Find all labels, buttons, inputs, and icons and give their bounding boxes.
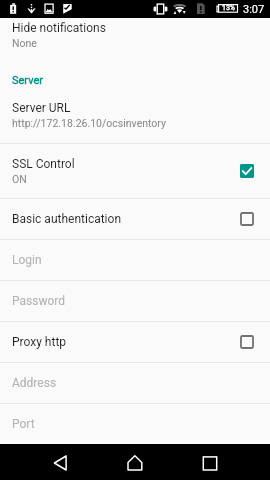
button[interactable]: Back xyxy=(38,444,83,480)
staticText: Hide notifications xyxy=(12,21,106,35)
staticText: Address xyxy=(12,376,57,390)
button[interactable]: Proxy http xyxy=(0,322,270,362)
staticText: Password xyxy=(12,294,66,308)
button[interactable]: SSL Control xyxy=(0,144,270,198)
staticText: Login xyxy=(12,253,42,267)
staticText: None xyxy=(12,37,37,49)
button[interactable]: Recent apps xyxy=(188,444,233,480)
staticText: SSL Control xyxy=(12,157,75,171)
button[interactable]: Port xyxy=(0,404,270,444)
button[interactable]: Server URL xyxy=(0,87,270,143)
button[interactable]: Basic authentication xyxy=(0,199,270,239)
staticText: Server URL xyxy=(12,101,71,115)
staticText: 13% xyxy=(222,4,235,12)
staticText: Proxy http xyxy=(12,335,67,349)
staticText: ON xyxy=(12,173,27,185)
staticText: Basic authentication xyxy=(12,212,122,226)
staticText: 3:07 xyxy=(243,3,265,16)
button[interactable]: Hide notifications xyxy=(0,18,270,59)
staticText: http://172.18.26.10/ocsinventory xyxy=(12,117,166,129)
button[interactable]: Password xyxy=(0,281,270,321)
button[interactable]: Login xyxy=(0,240,270,280)
staticText: Port xyxy=(12,417,35,431)
button[interactable]: Address xyxy=(0,363,270,403)
staticText: Server xyxy=(12,74,44,87)
button[interactable]: Home xyxy=(112,444,157,480)
